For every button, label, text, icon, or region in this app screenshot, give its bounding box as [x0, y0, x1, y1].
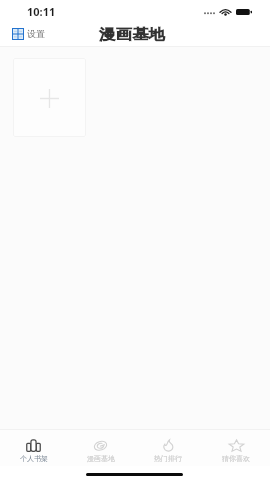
staticText: 设置 [27, 28, 45, 39]
button[interactable]: 热门排行 [134, 429, 202, 466]
staticText: 漫画基地 [87, 454, 115, 463]
button[interactable]: 猜你喜欢 [202, 429, 270, 466]
button[interactable]: 个人书架 [0, 429, 67, 466]
staticText: 漫画基地 [99, 26, 166, 44]
staticText: 热门排行 [154, 454, 182, 463]
staticText: 10:11 [27, 4, 56, 19]
button[interactable]: 漫画基地 [67, 429, 134, 466]
button[interactable]: 设置 [12, 28, 45, 40]
staticText: 猜你喜欢 [222, 454, 250, 463]
staticText: 个人书架 [20, 454, 48, 463]
